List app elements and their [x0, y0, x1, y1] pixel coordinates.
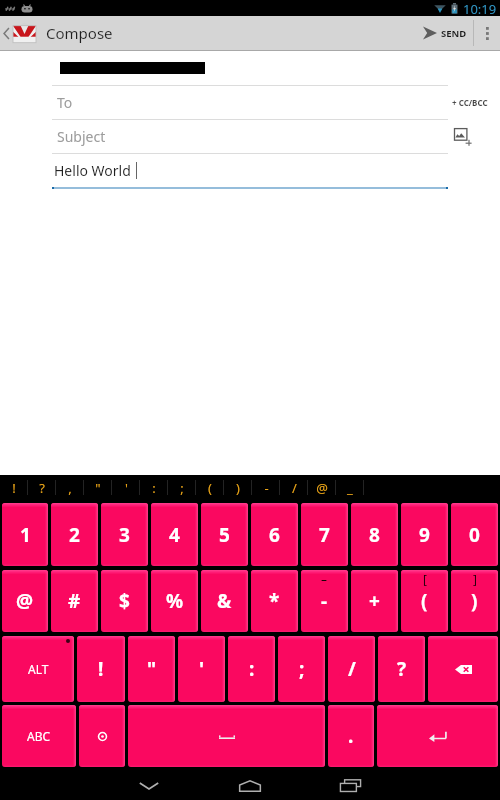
staticText: [ — [423, 571, 427, 587]
button[interactable]: Attach picture — [454, 127, 474, 147]
button[interactable]: More options — [474, 16, 500, 50]
button[interactable]: + CC/BCC — [446, 86, 500, 119]
button[interactable]: . — [328, 705, 374, 767]
button[interactable]: 1 — [2, 503, 48, 566]
staticText: 7 — [319, 522, 330, 548]
button[interactable]: # — [51, 570, 98, 632]
staticText: ] — [473, 571, 477, 587]
button[interactable]: – — [301, 570, 348, 632]
staticText: 4 — [169, 522, 180, 548]
button[interactable]: Enter — [377, 705, 498, 767]
button[interactable]: Home — [200, 767, 300, 800]
staticText: / — [348, 656, 356, 682]
staticText: 10:19 — [463, 0, 497, 16]
button[interactable]: 9 — [401, 503, 448, 566]
button[interactable]: 3 — [101, 503, 148, 566]
staticText: ! — [12, 479, 16, 497]
button[interactable]: - — [252, 475, 280, 500]
button[interactable]: ? — [378, 636, 425, 702]
button[interactable]: " — [84, 475, 112, 500]
button[interactable]: $ — [101, 570, 148, 632]
button[interactable]: ; — [278, 636, 325, 702]
button[interactable]: To — [0, 86, 500, 119]
button[interactable]: ABC — [2, 705, 76, 767]
staticText: Compose — [46, 23, 113, 43]
staticText: 6 — [269, 522, 280, 548]
staticText: - — [264, 479, 269, 497]
button[interactable]: % — [151, 570, 198, 632]
staticText: ) — [471, 588, 478, 614]
staticText: ? — [39, 479, 45, 497]
button[interactable]: 2 — [51, 503, 98, 566]
button[interactable]: ' — [178, 636, 225, 702]
staticText: ABC — [27, 728, 51, 744]
staticText: ( — [208, 479, 212, 497]
button[interactable]: Recent apps — [300, 767, 400, 800]
button[interactable]: ( — [196, 475, 224, 500]
button[interactable]: ALT — [2, 636, 74, 702]
button[interactable]: Hello World — [0, 154, 500, 187]
staticText: Subject — [57, 127, 106, 146]
button[interactable]: _ — [336, 475, 364, 500]
staticText: _ — [347, 479, 353, 497]
button[interactable]: ) — [224, 475, 252, 500]
button[interactable]: Space — [128, 705, 325, 767]
button[interactable]: Hide keyboard — [99, 767, 199, 800]
staticText: 3 — [119, 522, 130, 548]
button[interactable]: @ — [308, 475, 336, 500]
staticText: ; — [299, 656, 305, 682]
button[interactable]: Keyboard settings — [79, 705, 125, 767]
button[interactable]: , — [56, 475, 84, 500]
button[interactable]: [ — [401, 570, 448, 632]
staticText: @ — [16, 588, 34, 614]
button[interactable]: 5 — [201, 503, 248, 566]
button[interactable]: 4 — [151, 503, 198, 566]
button[interactable]: / — [280, 475, 308, 500]
button[interactable]: 6 — [251, 503, 298, 566]
staticText: " — [95, 479, 101, 497]
button[interactable]: Navigate up — [0, 16, 40, 50]
button[interactable]: Subject — [0, 120, 500, 153]
staticText: 9 — [419, 522, 430, 548]
staticText: : — [249, 656, 255, 682]
button[interactable]: * — [251, 570, 298, 632]
staticText: * — [269, 588, 280, 614]
staticText: 1 — [20, 522, 31, 548]
staticText: ! — [98, 656, 104, 682]
button[interactable]: : — [140, 475, 168, 500]
staticText: + — [369, 588, 380, 614]
staticText: – — [321, 571, 328, 587]
staticText: / — [292, 479, 297, 497]
button[interactable]: + — [351, 570, 398, 632]
button[interactable]: 0 — [451, 503, 498, 566]
staticText: . — [348, 723, 354, 749]
button[interactable]: & — [201, 570, 248, 632]
button[interactable]: ! — [0, 475, 28, 500]
button[interactable]: SEND — [414, 16, 473, 50]
button[interactable]: ] — [451, 570, 498, 632]
staticText: ( — [421, 588, 428, 614]
button[interactable]: 8 — [351, 503, 398, 566]
button[interactable]: ; — [168, 475, 196, 500]
staticText: - — [321, 588, 328, 614]
button[interactable]: Delete — [428, 636, 498, 702]
staticText: ALT — [28, 661, 49, 677]
button[interactable]: ! — [77, 636, 125, 702]
staticText: 0 — [469, 522, 480, 548]
button[interactable]: / — [328, 636, 375, 702]
staticText: , — [68, 479, 72, 497]
staticText: 2 — [69, 522, 80, 548]
button[interactable]: @ — [2, 570, 48, 632]
staticText: ' — [125, 479, 128, 497]
button[interactable]: : — [228, 636, 275, 702]
staticText: ; — [180, 479, 184, 497]
staticText: @ — [316, 479, 328, 497]
button[interactable]: 7 — [301, 503, 348, 566]
staticText: ' — [199, 656, 205, 682]
button[interactable]: " — [128, 636, 175, 702]
button[interactable]: ' — [112, 475, 140, 500]
button[interactable]: ? — [28, 475, 56, 500]
staticText: % — [166, 588, 184, 614]
staticText: 8 — [369, 522, 380, 548]
staticText: ) — [236, 479, 240, 497]
